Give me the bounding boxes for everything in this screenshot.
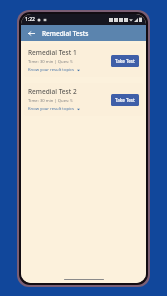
staticText: Remedial Tests: [42, 29, 89, 38]
button[interactable]: Know your result topics: [28, 106, 80, 112]
button[interactable]: Know your result topics: [28, 67, 80, 73]
staticText: Take Test: [115, 97, 135, 103]
button[interactable]: Back: [25, 27, 37, 39]
button[interactable]: Take Test: [111, 94, 139, 106]
staticText: Remedial Test 1: [28, 48, 77, 57]
button[interactable]: Remedial Test 2: [24, 83, 143, 116]
staticText: Time: 30 min | Ques: 5: [28, 59, 73, 65]
staticText: Time: 30 min | Ques: 5: [28, 98, 73, 104]
button[interactable]: Take Test: [111, 55, 139, 67]
staticText: 1:22: [25, 16, 35, 23]
staticText: Know your result topics: [28, 67, 75, 73]
staticText: Know your result topics: [28, 106, 75, 112]
staticText: Remedial Test 2: [28, 87, 77, 96]
button[interactable]: Remedial Test 1: [24, 44, 143, 77]
staticText: Take Test: [115, 58, 135, 64]
